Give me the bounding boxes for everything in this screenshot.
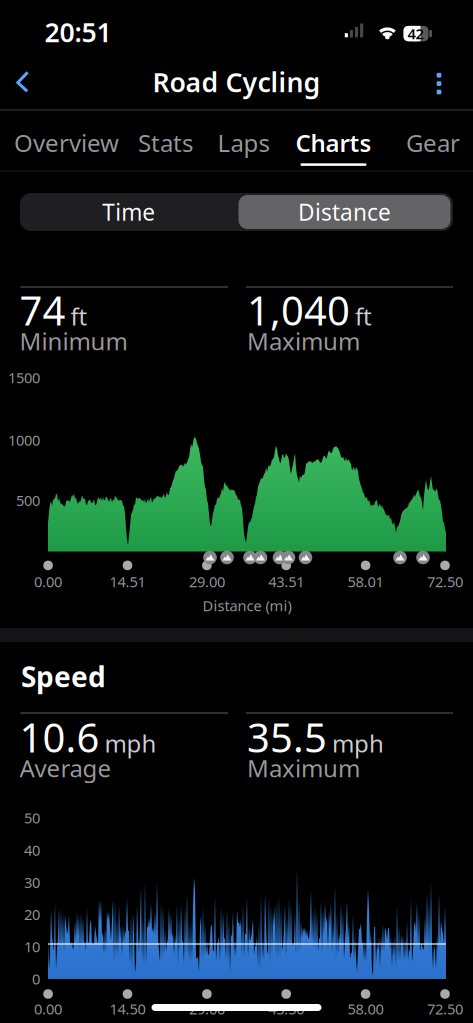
staticText: mph bbox=[104, 727, 156, 759]
staticText: 42 bbox=[407, 24, 423, 43]
staticText: Gear bbox=[406, 127, 460, 159]
staticText: 58.00 bbox=[348, 999, 384, 1018]
staticText: 50 bbox=[24, 808, 40, 828]
staticText: 20:51 bbox=[44, 14, 111, 50]
staticText: Overview bbox=[14, 127, 119, 159]
staticText: 14.51 bbox=[109, 572, 145, 591]
staticText: Road Cycling bbox=[152, 64, 320, 100]
staticText: 30 bbox=[24, 872, 40, 892]
staticText: 72.50 bbox=[427, 999, 463, 1018]
button[interactable]: Back bbox=[0, 60, 44, 104]
staticText: Maximum bbox=[247, 752, 360, 784]
staticText: 0.00 bbox=[34, 999, 62, 1018]
staticText: 1500 bbox=[8, 368, 40, 387]
staticText: Minimum bbox=[19, 325, 127, 357]
button[interactable]: Gear bbox=[393, 121, 473, 165]
staticText: 58.01 bbox=[348, 572, 384, 591]
staticText: 1,040 bbox=[247, 283, 350, 336]
staticText: Laps bbox=[217, 127, 269, 159]
button[interactable]: Time bbox=[23, 194, 235, 230]
staticText: 43.51 bbox=[268, 572, 304, 591]
button[interactable]: Distance bbox=[238, 195, 450, 229]
staticText: Average bbox=[19, 752, 111, 784]
staticText: mph bbox=[332, 727, 384, 759]
staticText: Distance bbox=[298, 197, 391, 227]
staticText: 14.50 bbox=[109, 999, 145, 1018]
staticText: 1000 bbox=[8, 430, 40, 450]
staticText: 40 bbox=[24, 840, 40, 860]
staticText: 29.00 bbox=[189, 999, 225, 1018]
staticText: Stats bbox=[138, 127, 193, 159]
staticText: 74 bbox=[19, 283, 65, 336]
button[interactable]: Laps bbox=[205, 121, 281, 165]
button[interactable]: Charts bbox=[285, 121, 381, 165]
staticText: 43.50 bbox=[268, 999, 304, 1018]
button[interactable]: Overview bbox=[7, 121, 125, 165]
staticText: 35.5 bbox=[247, 710, 327, 763]
staticText: Speed bbox=[21, 658, 106, 695]
staticText: Maximum bbox=[247, 325, 360, 357]
staticText: 20 bbox=[24, 905, 40, 924]
staticText: ft bbox=[355, 300, 372, 332]
staticText: 0.00 bbox=[34, 572, 62, 591]
button[interactable]: More options bbox=[417, 62, 461, 106]
staticText: Time bbox=[102, 197, 155, 227]
staticText: Distance (mi) bbox=[202, 596, 291, 615]
staticText: 10 bbox=[24, 937, 40, 956]
button[interactable]: Stats bbox=[125, 121, 205, 165]
staticText: 0 bbox=[32, 969, 40, 989]
staticText: 10.6 bbox=[19, 710, 99, 763]
staticText: Charts bbox=[295, 127, 371, 159]
staticText: 500 bbox=[16, 491, 40, 510]
staticText: ft bbox=[70, 300, 87, 332]
staticText: 72.50 bbox=[427, 572, 463, 591]
staticText: 29.00 bbox=[189, 572, 225, 591]
